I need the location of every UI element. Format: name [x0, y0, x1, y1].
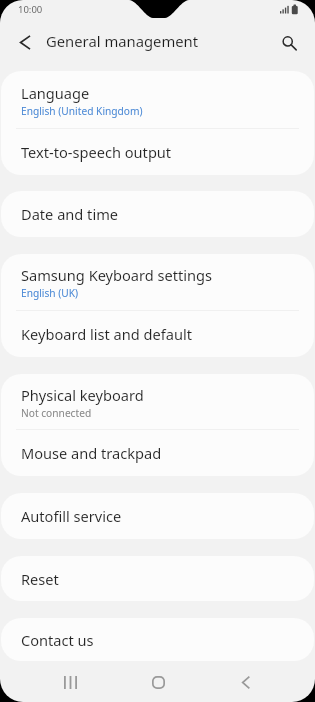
button[interactable]: Back — [202, 662, 290, 702]
staticText: Language — [21, 83, 90, 103]
staticText: Autofill service — [21, 506, 122, 526]
button[interactable]: Search — [276, 30, 302, 56]
staticText: Reset — [21, 569, 59, 589]
button[interactable]: Physical keyboard — [1, 374, 314, 430]
button[interactable]: Home — [114, 662, 202, 702]
staticText: English (United Kingdom) — [21, 104, 143, 118]
staticText: Date and time — [21, 204, 119, 224]
button[interactable]: Back — [12, 29, 38, 55]
staticText: Contact us — [21, 630, 94, 650]
staticText: Physical keyboard — [21, 385, 144, 405]
staticText: English (UK) — [21, 286, 79, 300]
staticText: Samsung Keyboard settings — [21, 265, 213, 285]
button[interactable]: Date and time — [1, 191, 314, 237]
button[interactable]: Mouse and trackpad — [1, 430, 314, 476]
button[interactable]: Samsung Keyboard settings — [1, 254, 314, 311]
button[interactable]: Text-to-speech output — [1, 129, 314, 175]
button[interactable]: Contact us — [1, 618, 314, 661]
button[interactable]: Language — [1, 71, 314, 129]
staticText: 10:00 — [18, 3, 43, 16]
button[interactable]: Keyboard list and default — [1, 311, 314, 357]
staticText: Text-to-speech output — [21, 142, 172, 162]
staticText: Mouse and trackpad — [21, 443, 162, 463]
button[interactable]: Recent apps — [26, 662, 114, 702]
staticText: Keyboard list and default — [21, 324, 192, 344]
button[interactable]: Autofill service — [1, 493, 314, 539]
staticText: General management — [46, 31, 199, 51]
button[interactable]: Reset — [1, 556, 314, 601]
staticText: Not connected — [21, 406, 92, 420]
